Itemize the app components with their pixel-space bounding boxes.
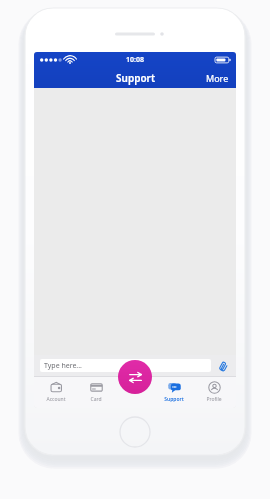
staticText: Card [90,396,102,403]
button[interactable]: Type here... [40,359,211,372]
staticText: 10:08 [126,55,144,65]
button[interactable]: Support [155,376,193,408]
staticText: More [206,72,229,84]
button[interactable]: Card [77,376,115,408]
button[interactable]: Transfer money [118,360,152,394]
staticText: Profile [206,396,222,403]
button[interactable]: Account [37,376,75,408]
button[interactable]: Attach file [216,359,230,373]
staticText: Type here... [44,361,82,371]
button[interactable]: More [199,69,236,87]
staticText: Account [46,396,66,403]
button[interactable]: Profile [195,376,233,408]
staticText: Support [116,71,155,85]
staticText: Support [164,396,184,403]
